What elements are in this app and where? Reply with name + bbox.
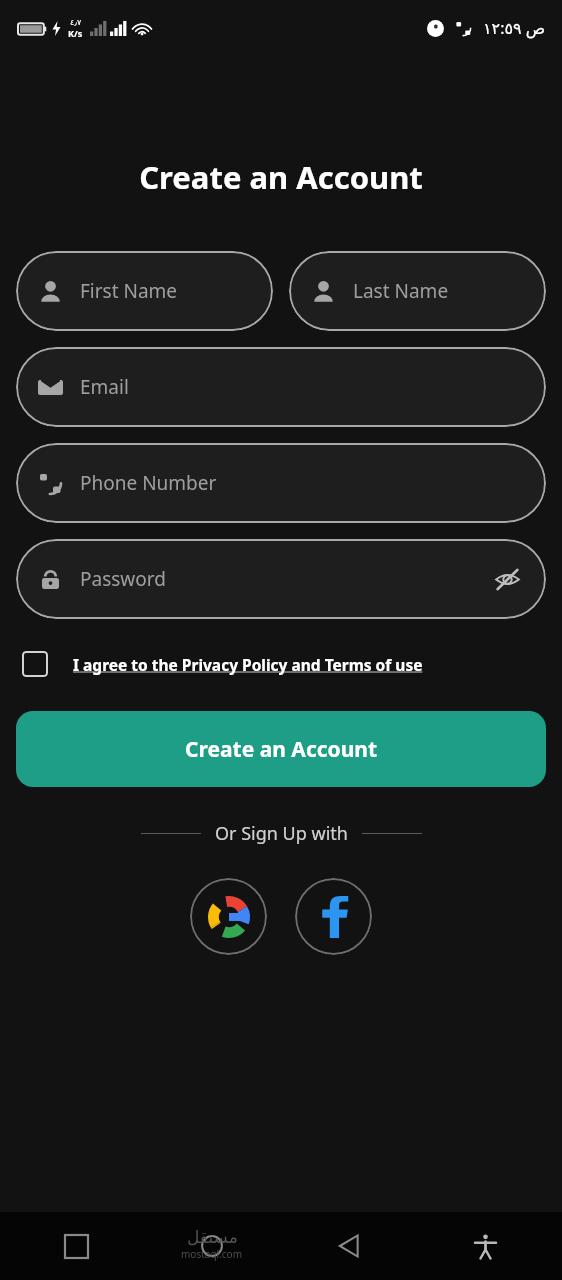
staticText: Create an Account bbox=[0, 156, 562, 198]
button[interactable]: Last Name bbox=[289, 251, 546, 331]
staticText: Create an Account bbox=[185, 735, 378, 764]
staticText: Email bbox=[80, 374, 524, 400]
button[interactable]: First Name bbox=[16, 251, 273, 331]
staticText: Last Name bbox=[353, 278, 524, 304]
button[interactable]: Sign up with Google bbox=[190, 878, 267, 955]
staticText: ص ١٢:٥٩ bbox=[483, 17, 546, 39]
button[interactable]: Recent apps bbox=[8, 1212, 144, 1280]
button[interactable]: Back bbox=[280, 1212, 417, 1280]
button[interactable]: Email bbox=[16, 347, 546, 427]
staticText: ٤٫٧ bbox=[70, 18, 82, 27]
staticText: Or Sign Up with bbox=[215, 821, 348, 846]
staticText: Phone Number bbox=[80, 470, 524, 496]
staticText: mostaql.com bbox=[181, 1247, 243, 1261]
staticText: K/s bbox=[68, 27, 83, 39]
button[interactable]: Show password bbox=[490, 562, 524, 596]
staticText: مستقل bbox=[187, 1227, 238, 1247]
button[interactable]: Sign up with Facebook bbox=[295, 878, 372, 955]
button[interactable] bbox=[16, 645, 54, 683]
staticText: Password bbox=[80, 566, 490, 592]
button[interactable]: Accessibility menu bbox=[417, 1212, 554, 1280]
button[interactable]: Password bbox=[16, 539, 546, 619]
staticText: First Name bbox=[80, 278, 251, 304]
button[interactable]: I agree to the Privacy Policy and Terms … bbox=[73, 654, 423, 675]
button[interactable]: Phone Number bbox=[16, 443, 546, 523]
button[interactable]: Create an Account bbox=[16, 711, 546, 787]
button[interactable]: Home bbox=[144, 1212, 280, 1280]
